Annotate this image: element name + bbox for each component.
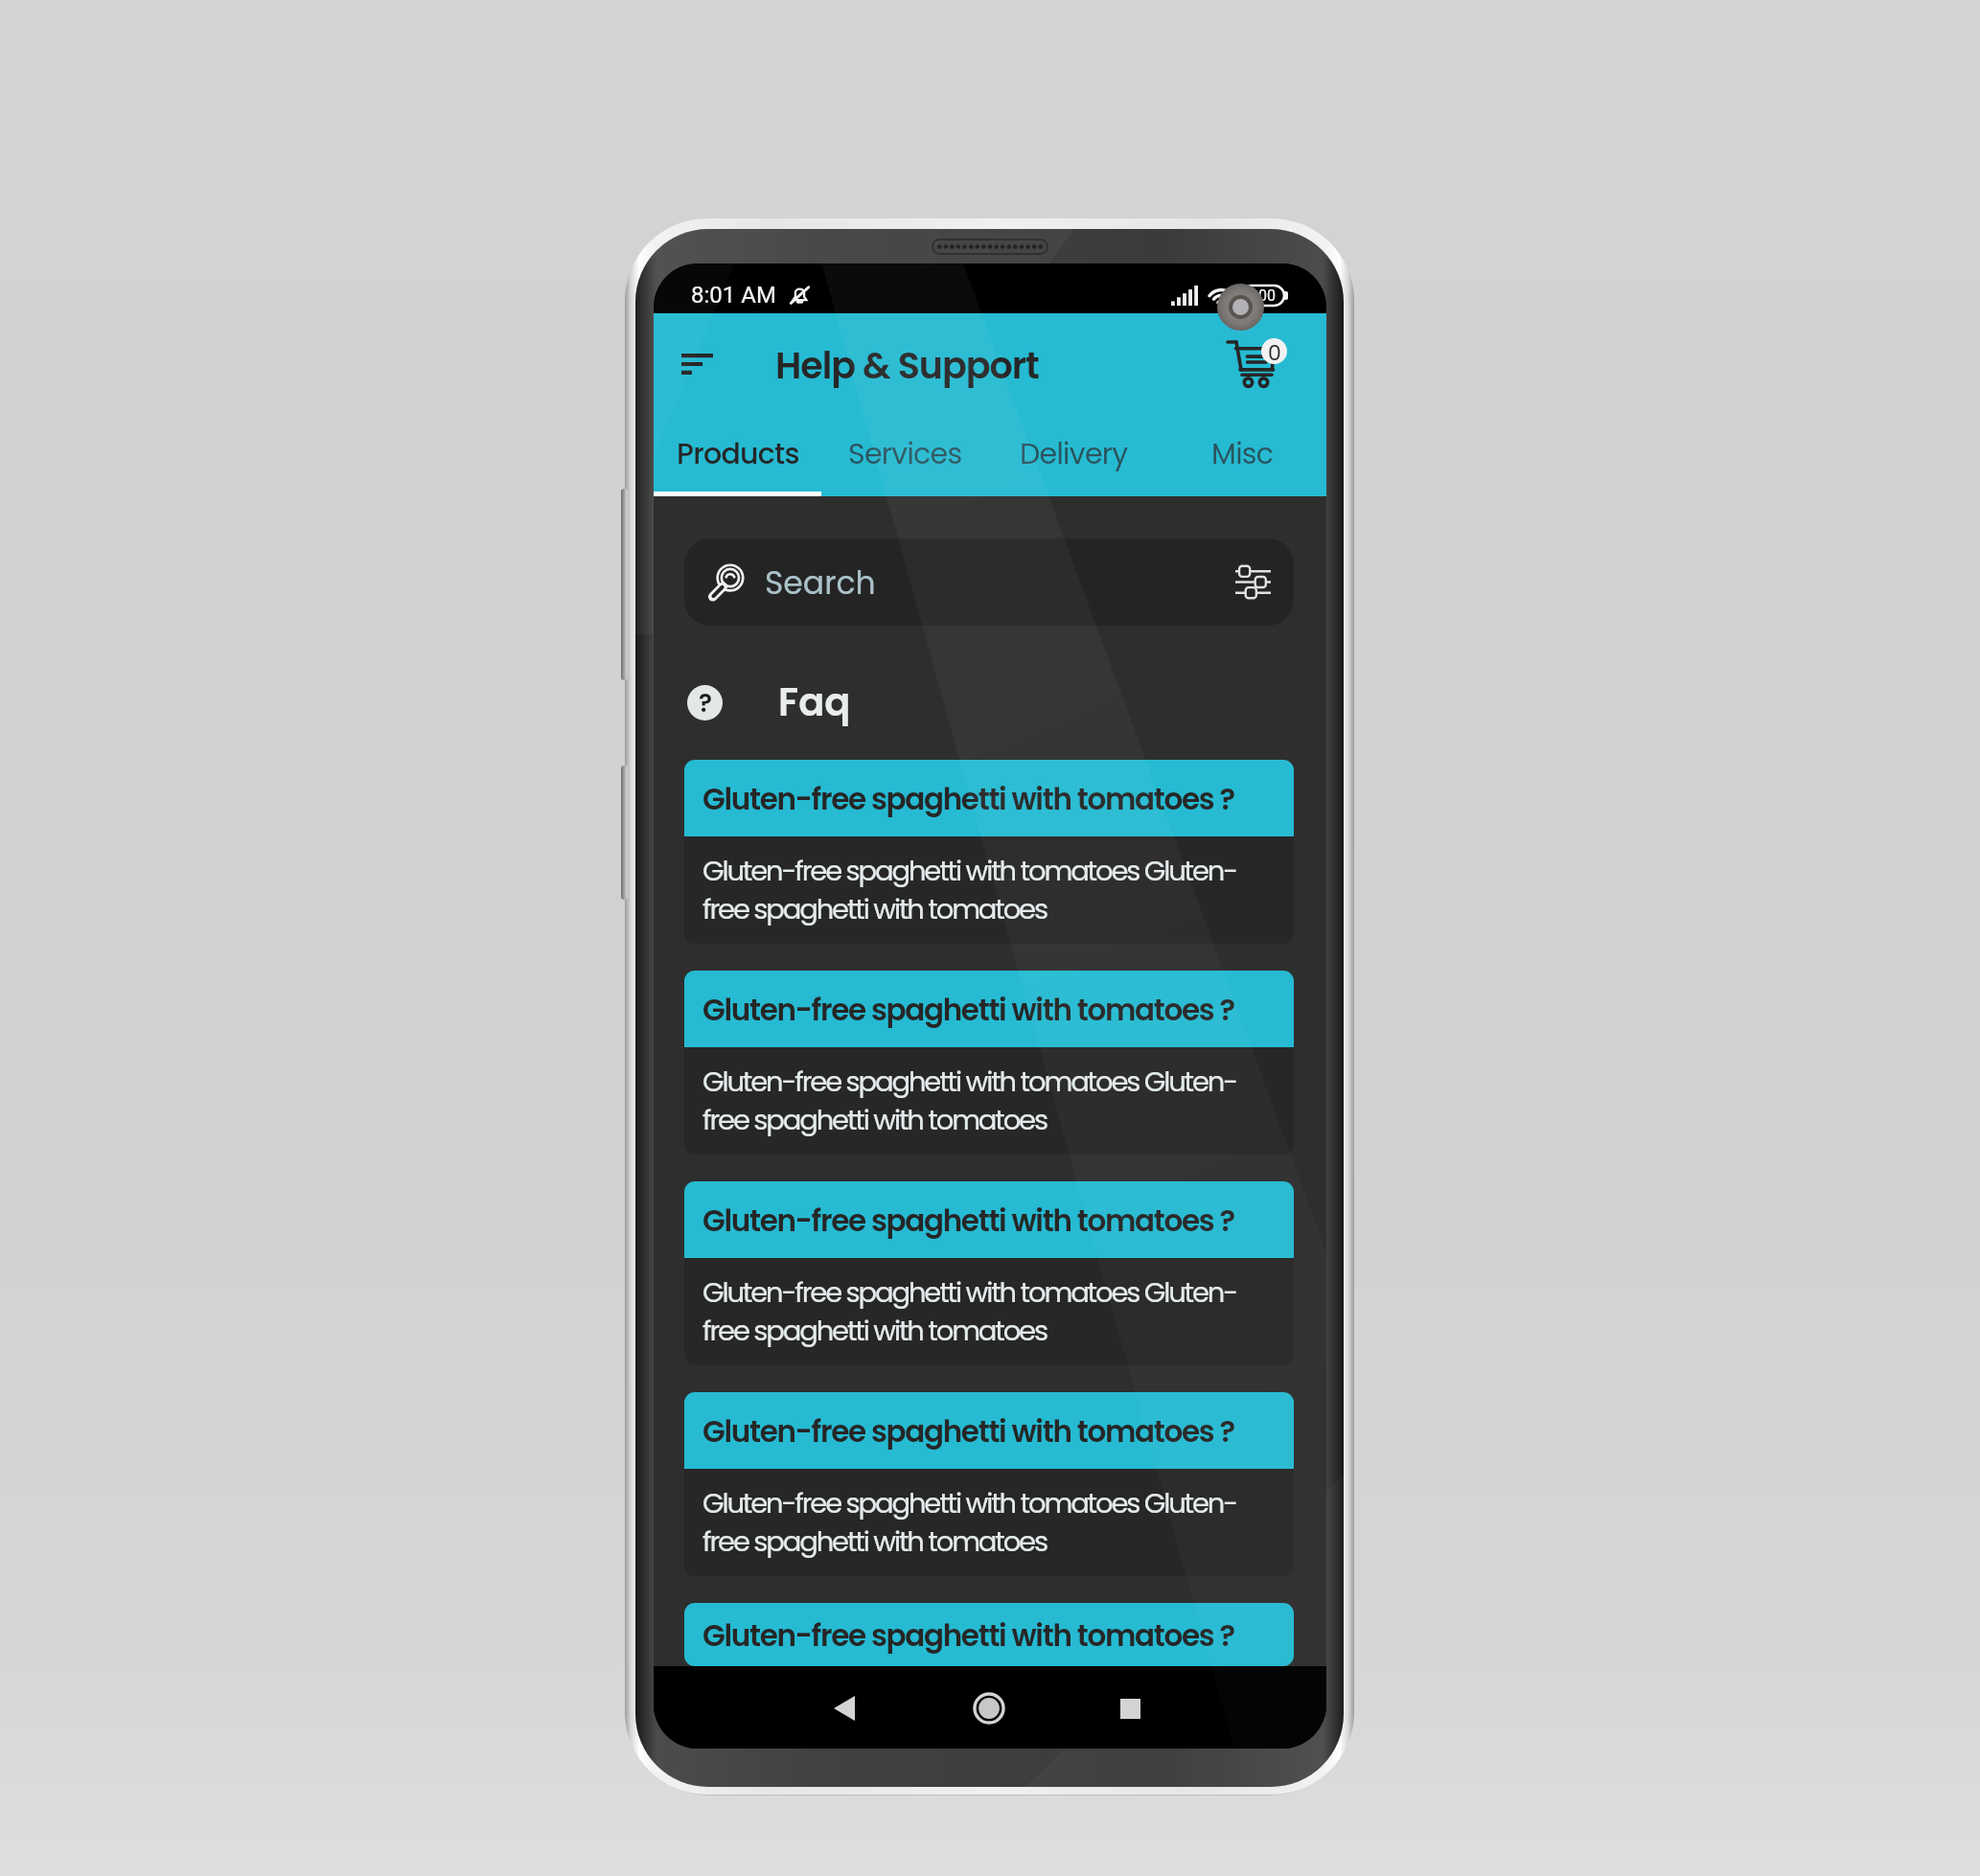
button[interactable]: Delivery (989, 412, 1158, 496)
staticText: Gluten-free spaghetti with tomatoes Glut… (702, 1273, 1267, 1350)
button[interactable]: Gluten-free spaghetti with tomatoes ? (684, 760, 1294, 944)
staticText: Delivery (1020, 434, 1128, 474)
staticText: Help & Support (775, 340, 1039, 391)
staticText: Gluten-free spaghetti with tomatoes Glut… (702, 1484, 1267, 1561)
button[interactable]: Misc (1158, 412, 1326, 496)
staticText: Gluten-free spaghetti with tomatoes ? (702, 989, 1234, 1030)
button[interactable]: Home (959, 1679, 1019, 1738)
button[interactable]: Recent apps (1100, 1679, 1160, 1738)
staticText: Faq (778, 675, 851, 729)
staticText: Gluten-free spaghetti with tomatoes ? (702, 1614, 1234, 1656)
button[interactable]: Gluten-free spaghetti with tomatoes ? (684, 1392, 1294, 1576)
button[interactable]: Gluten-free spaghetti with tomatoes ? (684, 971, 1294, 1155)
staticText: Gluten-free spaghetti with tomatoes ? (702, 1200, 1234, 1241)
button[interactable]: Search (684, 538, 1294, 626)
button[interactable]: Gluten-free spaghetti with tomatoes ? (684, 1181, 1294, 1365)
button[interactable]: Services (821, 412, 989, 496)
staticText: Misc (1211, 434, 1274, 474)
button[interactable]: Gluten-free spaghetti with tomatoes ? (684, 1603, 1294, 1666)
staticText: Gluten-free spaghetti with tomatoes ? (702, 778, 1234, 819)
staticText: Gluten-free spaghetti with tomatoes Glut… (702, 1063, 1267, 1139)
staticText: Gluten-free spaghetti with tomatoes ? (702, 1410, 1234, 1452)
staticText: Search (765, 561, 876, 605)
button[interactable]: Products (654, 412, 821, 496)
staticText: Services (848, 434, 962, 474)
staticText: 0 (1268, 338, 1281, 364)
button[interactable]: Back (815, 1679, 874, 1738)
staticText: 100 (1250, 286, 1276, 305)
staticText: 8:01 AM (691, 282, 776, 309)
staticText: ? (699, 686, 712, 721)
button[interactable]: Open navigation menu (676, 342, 719, 385)
staticText: Products (677, 434, 799, 474)
button[interactable]: Shopping cart, 0 items (1218, 331, 1291, 396)
staticText: Gluten-free spaghetti with tomatoes Glut… (702, 852, 1267, 928)
